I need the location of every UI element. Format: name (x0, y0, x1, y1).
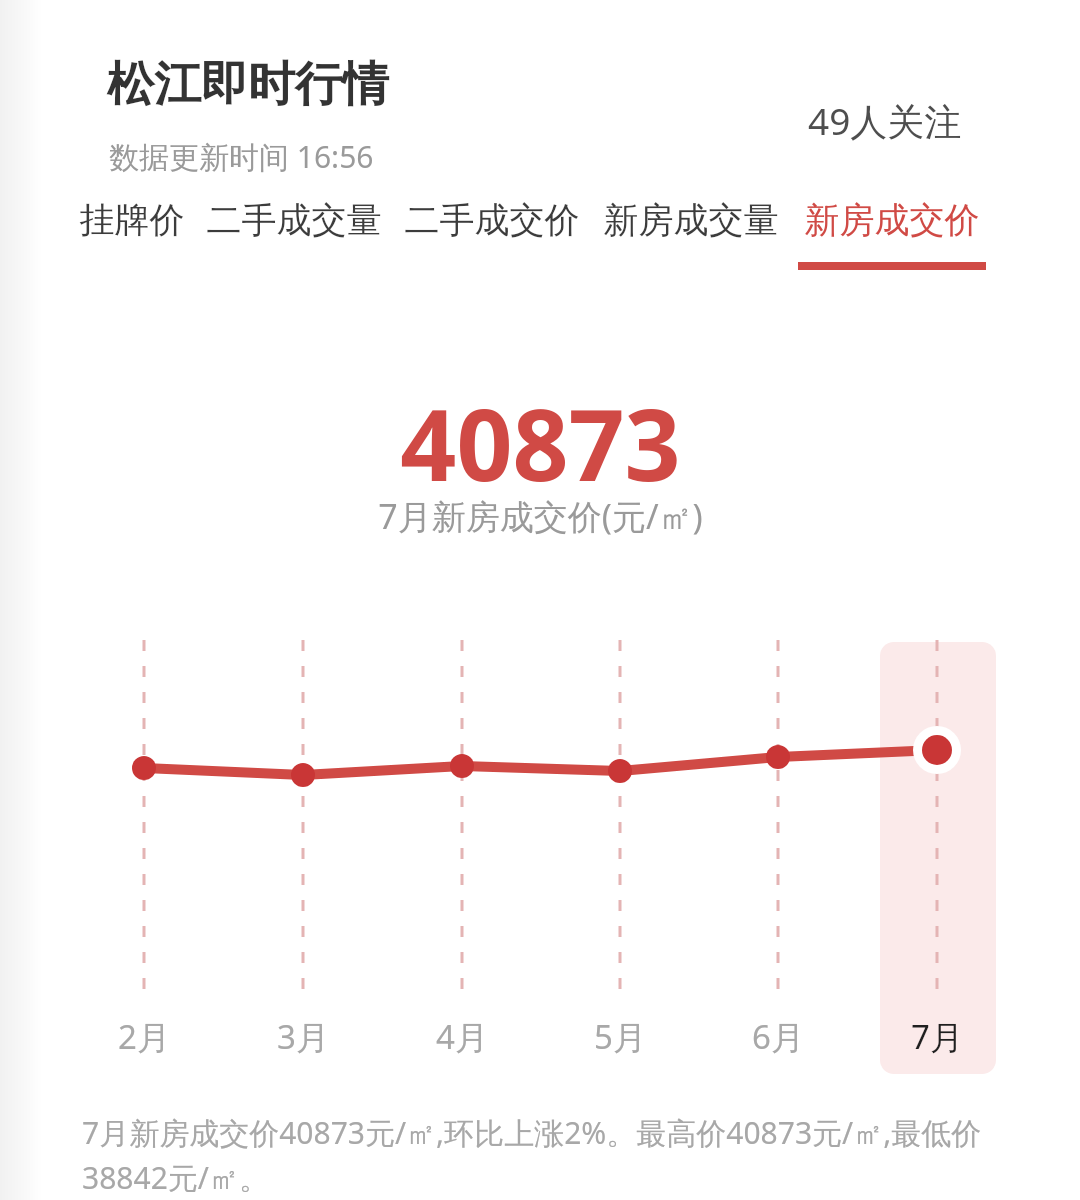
staticText: 6月 (752, 1014, 804, 1059)
staticText: 49人关注 (808, 95, 962, 146)
button[interactable]: 挂牌价 (72, 198, 192, 262)
button[interactable]: 新房成交量 (597, 198, 785, 262)
staticText: 新房成交量 (597, 198, 785, 242)
button[interactable]: 二手成交量 (200, 198, 388, 262)
staticText: 数据更新时间 16:56 (109, 136, 374, 177)
staticText: 7月 (911, 1014, 963, 1059)
other: Price trend chart (0, 0, 1080, 1200)
staticText: 新房成交价 (797, 198, 987, 242)
staticText: 7月新房成交价(元/㎡) (378, 493, 703, 539)
staticText: 二手成交价 (398, 198, 586, 242)
button[interactable]: 49人关注 (800, 90, 970, 151)
staticText: 5月 (594, 1014, 646, 1059)
staticText: 挂牌价 (72, 198, 192, 242)
staticText: 二手成交量 (200, 198, 388, 242)
staticText: 40873 (400, 376, 681, 509)
staticText: 4月 (436, 1014, 488, 1059)
staticText: 3月 (277, 1014, 329, 1059)
staticText: 2月 (118, 1014, 170, 1059)
staticText: 松江即时行情 (107, 55, 389, 114)
button[interactable]: 二手成交价 (398, 198, 586, 262)
staticText: 7月新房成交价40873元/㎡,环比上涨2%。最高价40873元/㎡,最低价38… (82, 1112, 992, 1198)
button[interactable]: 新房成交价 (797, 198, 987, 270)
